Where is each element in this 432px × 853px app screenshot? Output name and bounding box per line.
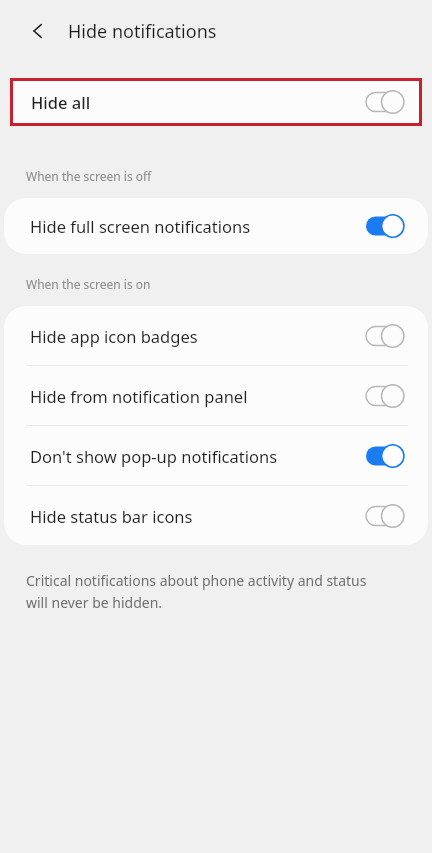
staticText: Hide notifications [68, 19, 217, 44]
staticText: Hide all [31, 91, 366, 113]
staticText: When the screen is off [26, 168, 152, 184]
button[interactable]: Hide all [13, 81, 419, 123]
button[interactable]: Hide from notification panel [4, 366, 428, 425]
staticText: Hide app icon badges [30, 325, 366, 347]
staticText: Critical notifications about phone activ… [26, 571, 386, 612]
staticText: Don't show pop-up notifications [30, 445, 366, 467]
button[interactable]: Don't show pop-up notifications [4, 426, 428, 485]
staticText: Hide from notification panel [30, 385, 366, 407]
button[interactable]: Back [20, 13, 56, 49]
button[interactable]: Hide full screen notifications [4, 198, 428, 254]
staticText: Hide status bar icons [30, 505, 366, 527]
staticText: When the screen is on [26, 276, 151, 292]
button[interactable]: Hide status bar icons [4, 486, 428, 545]
staticText: Hide full screen notifications [30, 215, 366, 237]
button[interactable]: Hide app icon badges [4, 306, 428, 365]
